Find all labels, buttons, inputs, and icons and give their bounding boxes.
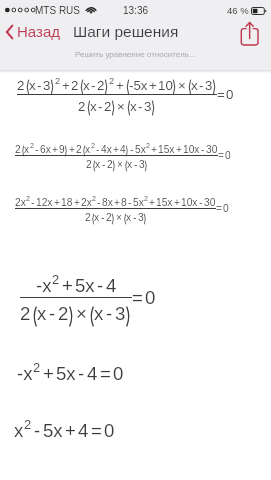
staticText: = — [91, 420, 102, 441]
staticText: 2 — [20, 303, 31, 324]
staticText: 2 — [78, 99, 86, 114]
staticText: 2 — [86, 159, 92, 170]
staticText: + — [54, 197, 60, 208]
staticText: - — [91, 78, 96, 93]
staticText: x — [94, 212, 100, 223]
button[interactable]: Share — [235, 20, 265, 53]
staticText: = — [132, 287, 143, 308]
staticText: 2 — [146, 142, 150, 150]
staticText: × — [76, 303, 87, 324]
staticText: 5x — [56, 363, 76, 384]
staticText: 4 — [120, 144, 126, 155]
staticText: x — [130, 99, 137, 114]
staticText: 2 — [71, 78, 79, 93]
staticText: 0 — [223, 203, 229, 214]
staticText: 3 — [138, 212, 144, 223]
staticText: 4 — [106, 275, 117, 296]
staticText: 12x — [36, 197, 53, 208]
staticText: + — [174, 197, 180, 208]
staticText: 2x — [81, 197, 92, 208]
staticText: 9 — [59, 144, 65, 155]
staticText: - — [199, 78, 204, 93]
staticText: 2 — [24, 417, 32, 432]
staticText: 2 — [33, 360, 41, 375]
staticText: 2 — [106, 212, 112, 223]
staticText: 5x — [43, 420, 63, 441]
staticText: 2 — [26, 195, 30, 203]
staticText: + — [74, 197, 80, 208]
staticText: 4x — [101, 144, 112, 155]
staticText: 5x — [133, 197, 144, 208]
staticText: 2 — [30, 142, 34, 150]
staticText: 3 — [115, 303, 126, 324]
staticText: x — [191, 78, 198, 93]
staticText: - — [97, 197, 101, 208]
staticText: 6x — [40, 144, 51, 155]
button[interactable]: Назад — [2, 20, 66, 44]
staticText: 2 — [58, 303, 69, 324]
staticText: 0 — [226, 87, 234, 102]
staticText: 3 — [139, 159, 145, 170]
staticText: + — [62, 275, 73, 296]
staticText: 10x — [181, 197, 198, 208]
staticText: Решить уравнение относитель... — [75, 50, 196, 59]
staticText: 0 — [113, 363, 124, 384]
staticText: 13:36 — [123, 5, 149, 16]
staticText: x — [14, 420, 24, 441]
staticText: x — [24, 144, 30, 155]
staticText: 0 — [225, 150, 231, 161]
staticText: × — [117, 99, 125, 114]
staticText: - — [34, 420, 41, 441]
staticText: 4 — [87, 363, 98, 384]
staticText: + — [62, 78, 70, 93]
staticText: - — [133, 212, 137, 223]
staticText: + — [176, 144, 182, 155]
staticText: x — [37, 303, 47, 324]
staticText: + — [149, 197, 155, 208]
staticText: 2 — [107, 159, 113, 170]
staticText: 8x — [102, 197, 113, 208]
staticText: x — [126, 212, 132, 223]
staticText: - — [134, 159, 138, 170]
staticText: 3 — [205, 78, 213, 93]
staticText: = — [217, 87, 225, 102]
staticText: 5x — [135, 144, 146, 155]
staticText: 5x — [75, 275, 95, 296]
staticText: 2x — [15, 197, 26, 208]
staticText: 15x — [156, 197, 173, 208]
staticText: 0 — [104, 420, 115, 441]
staticText: x — [85, 144, 91, 155]
staticText: + — [65, 420, 76, 441]
staticText: × — [178, 78, 186, 93]
staticText: 2 — [92, 195, 96, 203]
staticText: x — [90, 99, 97, 114]
staticText: 2 — [52, 272, 60, 287]
staticText: - — [201, 144, 205, 155]
staticText: - — [31, 197, 35, 208]
staticText: × — [116, 212, 122, 223]
staticText: 2 — [15, 144, 21, 155]
staticText: 0 — [145, 287, 156, 308]
staticText: + — [43, 363, 54, 384]
staticText: 30 — [206, 144, 218, 155]
staticText: 2 — [17, 78, 25, 93]
staticText: - — [37, 78, 42, 93]
staticText: - — [128, 197, 132, 208]
staticText: + — [52, 144, 58, 155]
staticText: x — [94, 303, 104, 324]
staticText: 3 — [43, 78, 51, 93]
staticText: 10x — [183, 144, 200, 155]
staticText: Шаги решения — [73, 23, 179, 40]
staticText: - — [96, 144, 100, 155]
staticText: - — [138, 99, 143, 114]
staticText: -5x — [129, 78, 148, 93]
staticText: - — [130, 144, 134, 155]
staticText: 15x — [158, 144, 175, 155]
staticText: Назад — [17, 23, 60, 40]
staticText: x — [127, 159, 133, 170]
staticText: x — [83, 78, 90, 93]
staticText: - — [49, 303, 56, 324]
staticText: - — [98, 99, 103, 114]
staticText: + — [116, 78, 124, 93]
staticText: × — [117, 159, 123, 170]
